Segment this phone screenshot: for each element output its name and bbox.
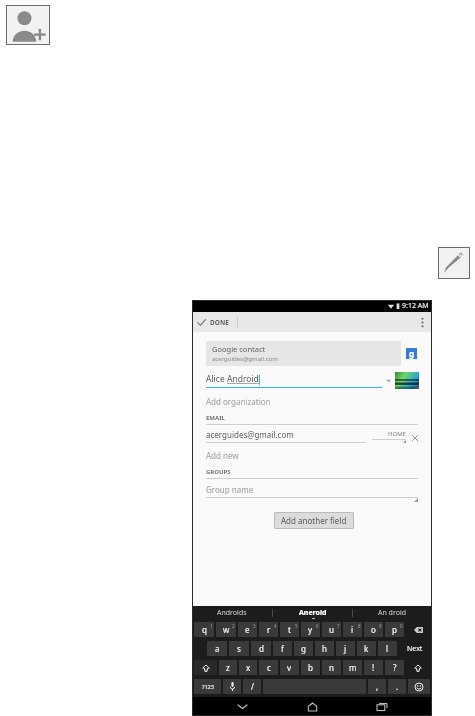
staticText: n: [329, 662, 334, 673]
button[interactable]: Shift: [406, 660, 430, 675]
staticText: f: [281, 643, 284, 654]
staticText: t: [288, 624, 291, 635]
button[interactable]: Shift: [194, 660, 217, 675]
button[interactable]: Voice input: [223, 679, 241, 694]
staticText: ?: [393, 662, 397, 673]
staticText: 0: [400, 623, 403, 629]
button[interactable]: s: [229, 641, 249, 656]
staticText: d: [259, 643, 264, 654]
staticText: j: [344, 643, 347, 654]
staticText: EMAIL: [206, 414, 225, 422]
staticText: DONE: [210, 318, 229, 327]
button[interactable]: Contact photo: [395, 372, 419, 389]
button[interactable]: .: [388, 679, 406, 694]
button[interactable]: n: [322, 660, 341, 675]
button[interactable]: Emoji: [408, 679, 430, 694]
button[interactable]: a: [207, 641, 227, 656]
button[interactable]: /: [243, 679, 261, 694]
staticText: Androids: [217, 608, 247, 618]
button[interactable]: e: [238, 622, 257, 637]
button[interactable]: Hide keyboard: [222, 697, 262, 716]
staticText: 2: [232, 623, 235, 629]
staticText: !: [372, 662, 375, 673]
button[interactable]: h: [315, 641, 334, 656]
button[interactable]: Remove email: [410, 433, 420, 443]
staticText: e: [245, 624, 250, 635]
button[interactable]: Next: [399, 641, 430, 656]
button[interactable]: Aneroid: [273, 606, 352, 620]
button[interactable]: Backspace: [406, 622, 430, 637]
staticText: Add another field: [281, 515, 347, 526]
staticText: ?123: [202, 683, 214, 690]
button[interactable]: t: [280, 622, 299, 637]
button[interactable]: Androids: [192, 606, 272, 620]
button[interactable]: An droid: [353, 606, 432, 620]
staticText: c: [267, 662, 271, 673]
button[interactable]: o: [364, 622, 383, 637]
button[interactable]: k: [357, 641, 376, 656]
button[interactable]: Add organization: [206, 396, 418, 407]
button[interactable]: Recent apps: [362, 697, 402, 716]
staticText: w: [223, 624, 230, 635]
button[interactable]: l: [378, 641, 397, 656]
button[interactable]: f: [273, 641, 292, 656]
staticText: k: [364, 643, 369, 654]
staticText: HOME: [388, 430, 406, 438]
staticText: acerguides@gmail.com: [206, 429, 294, 440]
button[interactable]: DONE: [192, 312, 237, 332]
staticText: 8: [358, 623, 361, 629]
button[interactable]: acerguides@gmail.com: [206, 429, 366, 443]
staticText: l: [386, 643, 389, 654]
button[interactable]: Add new: [206, 450, 418, 461]
staticText: v: [287, 662, 292, 673]
button[interactable]: ?123: [194, 679, 221, 694]
button[interactable]: z: [219, 660, 237, 675]
staticText: a: [215, 643, 220, 654]
staticText: g: [409, 348, 415, 359]
staticText: r: [267, 624, 271, 635]
button[interactable]: Edit: [438, 247, 470, 279]
staticText: p: [392, 624, 397, 635]
staticText: q: [202, 624, 207, 635]
staticText: o: [371, 624, 376, 635]
button[interactable]: m: [343, 660, 362, 675]
button[interactable]: Home: [292, 697, 332, 716]
staticText: 9:12 AM: [402, 301, 429, 311]
button[interactable]: y: [301, 622, 320, 637]
button[interactable]: ?: [385, 660, 404, 675]
button[interactable]: b: [301, 660, 320, 675]
button[interactable]: More options: [414, 312, 430, 332]
staticText: 5: [295, 623, 298, 629]
button[interactable]: c: [259, 660, 278, 675]
staticText: x: [246, 662, 251, 673]
button[interactable]: w: [216, 622, 236, 637]
staticText: ,: [376, 681, 379, 692]
staticText: h: [322, 643, 327, 654]
staticText: GROUPS: [206, 468, 231, 476]
button[interactable]: d: [251, 641, 271, 656]
button[interactable]: HOME: [372, 430, 406, 443]
staticText: .: [396, 681, 399, 692]
button[interactable]: i: [343, 622, 362, 637]
button[interactable]: p: [385, 622, 404, 637]
button[interactable]: Group name: [206, 484, 418, 502]
button[interactable]: u: [322, 622, 341, 637]
staticText: An droid: [378, 608, 407, 618]
button[interactable]: Add contact: [6, 5, 50, 45]
staticText: u: [329, 624, 334, 635]
button[interactable]: r: [259, 622, 278, 637]
staticText: m: [349, 662, 357, 673]
button[interactable]: j: [336, 641, 355, 656]
button[interactable]: q: [194, 622, 214, 637]
button[interactable]: g: [294, 641, 313, 656]
button[interactable]: Google contact: [206, 341, 422, 366]
staticText: /: [251, 681, 254, 692]
button[interactable]: ,: [368, 679, 386, 694]
button[interactable]: v: [280, 660, 299, 675]
button[interactable]: !: [364, 660, 383, 675]
button[interactable]: Alice: [206, 373, 382, 388]
staticText: b: [308, 662, 313, 673]
button[interactable]: Add another field: [274, 512, 354, 529]
button[interactable]: x: [239, 660, 257, 675]
